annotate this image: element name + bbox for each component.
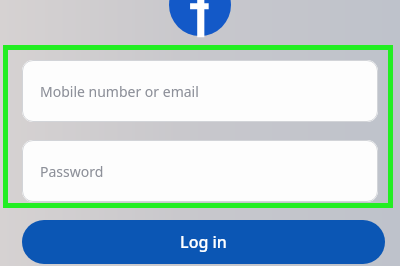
staticText: Mobile number or email [40,82,199,101]
button[interactable]: Log in [22,220,385,264]
other: Facebook logo [169,0,231,36]
staticText: Log in [180,231,227,253]
button[interactable]: Password [22,140,378,202]
button[interactable]: Mobile number or email [22,60,378,122]
staticText: Password [40,162,104,181]
